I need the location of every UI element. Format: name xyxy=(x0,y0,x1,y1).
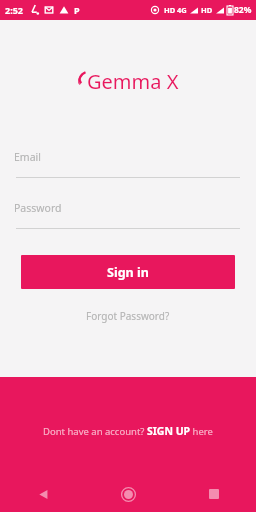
button[interactable]: Dont have an account? SIGN UP here xyxy=(37,421,219,441)
staticText: Gemma X xyxy=(87,68,179,95)
staticText: 2:52 xyxy=(5,4,23,16)
staticText: 4G xyxy=(177,5,187,15)
staticText: 82% xyxy=(234,4,252,16)
staticText: Dont have an account? SIGN UP here xyxy=(43,424,213,438)
staticText: Password xyxy=(14,201,62,215)
button[interactable]: Home xyxy=(86,476,171,512)
staticText: Forgot Password? xyxy=(86,309,170,323)
button[interactable]: Recent apps xyxy=(171,476,256,512)
staticText: P xyxy=(74,4,80,16)
button[interactable]: Password xyxy=(0,201,256,229)
staticText: HD xyxy=(164,5,176,15)
button[interactable]: Sign in xyxy=(21,255,235,289)
button[interactable]: Back xyxy=(0,476,86,512)
button[interactable]: Email xyxy=(0,150,256,178)
staticText: Sign in xyxy=(107,264,149,281)
button[interactable]: Forgot Password? xyxy=(80,306,176,326)
staticText: HD xyxy=(201,5,213,15)
staticText: Email xyxy=(14,150,41,164)
